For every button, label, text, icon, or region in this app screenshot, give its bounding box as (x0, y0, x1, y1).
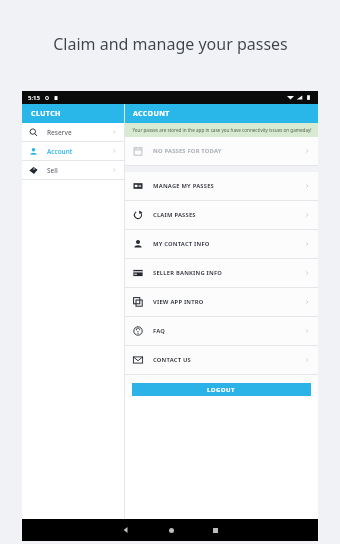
button[interactable]: NO PASSES FOR TODAY (125, 137, 318, 166)
staticText: CONTACT US (153, 356, 191, 364)
button[interactable]: Home (164, 523, 178, 537)
staticText: NO PASSES FOR TODAY (153, 147, 222, 155)
staticText: Account (47, 147, 73, 156)
staticText: Sell (47, 166, 58, 175)
button[interactable]: Sell (22, 161, 124, 180)
staticText: FAQ (153, 327, 166, 335)
button[interactable]: FAQ (125, 317, 318, 346)
staticText: Your passes are stored in the app in cas… (132, 127, 312, 133)
staticText: MY CONTACT INFO (153, 240, 210, 248)
staticText: VIEW APP INTRO (153, 298, 204, 306)
button[interactable]: MY CONTACT INFO (125, 230, 318, 259)
button[interactable]: Reserve (22, 123, 124, 142)
staticText: ACCOUNT (133, 109, 170, 119)
staticText: SELLER BANKING INFO (153, 269, 223, 277)
button[interactable]: CONTACT US (125, 346, 318, 375)
button[interactable]: MANAGE MY PASSES (125, 172, 318, 201)
button[interactable]: VIEW APP INTRO (125, 288, 318, 317)
staticText: CLUTCH (31, 109, 61, 119)
staticText: 5:15 (28, 94, 40, 102)
button[interactable]: CLAIM PASSES (125, 201, 318, 230)
button[interactable]: Account (22, 142, 124, 161)
button[interactable]: SELLER BANKING INFO (125, 259, 318, 288)
staticText: Reserve (47, 128, 72, 137)
staticText: CLAIM PASSES (153, 211, 196, 219)
staticText: Claim and manage your passes (53, 33, 288, 55)
button[interactable]: Back (119, 523, 133, 537)
staticText: LOGOUT (207, 386, 236, 394)
button[interactable]: Recents (208, 523, 222, 537)
staticText: MANAGE MY PASSES (153, 182, 214, 190)
button[interactable]: LOGOUT (132, 383, 311, 396)
